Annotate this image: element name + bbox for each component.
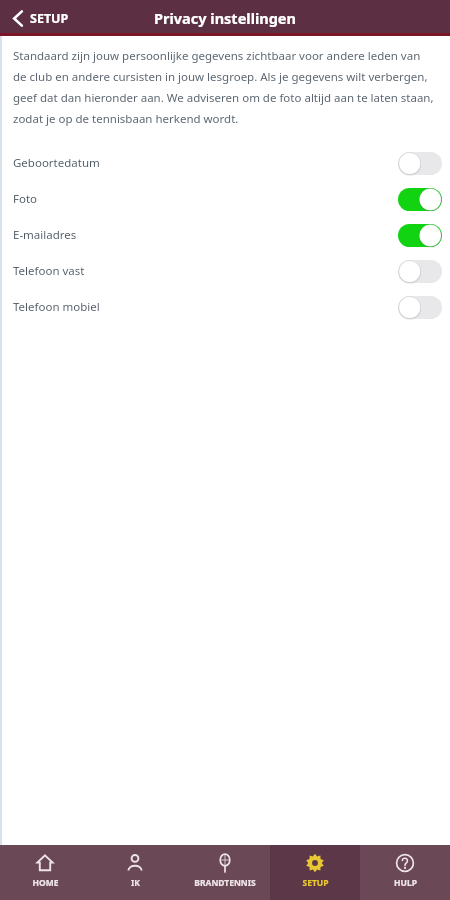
button[interactable]: HULP [360, 845, 450, 900]
button[interactable]: Telefoon mobiel [0, 289, 450, 325]
staticText: IK [131, 877, 140, 889]
button[interactable]: HOME [0, 845, 90, 900]
button[interactable]: Geboortedatum [0, 145, 450, 181]
staticText: Geboortedatum [13, 155, 100, 171]
button[interactable]: Foto [0, 181, 450, 217]
button[interactable]: BRANDTENNIS [180, 845, 270, 900]
staticText: Privacy instellingen [154, 8, 296, 28]
staticText: HULP [394, 877, 417, 889]
button[interactable]: IK [90, 845, 180, 900]
staticText: Foto [13, 191, 38, 207]
staticText: HOME [32, 877, 59, 889]
staticText: Telefoon mobiel [13, 299, 100, 315]
staticText: E-mailadres [13, 227, 77, 243]
button[interactable]: SETUP [8, 6, 73, 31]
staticText: SETUP [302, 877, 329, 889]
button[interactable]: Telefoon vast [0, 253, 450, 289]
button[interactable]: SETUP [270, 845, 360, 900]
button[interactable]: E-mailadres [0, 217, 450, 253]
staticText: Telefoon vast [13, 263, 85, 279]
staticText: Standaard zijn jouw persoonlijke gegeven… [13, 48, 434, 127]
staticText: SETUP [30, 10, 69, 27]
staticText: BRANDTENNIS [194, 877, 256, 889]
